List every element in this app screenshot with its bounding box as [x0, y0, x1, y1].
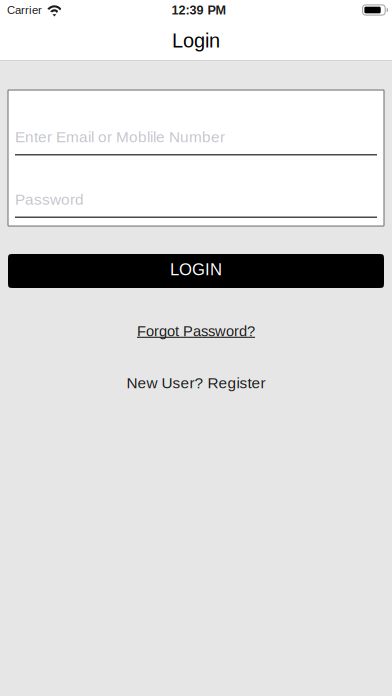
staticText: Password: [15, 191, 84, 208]
button[interactable]: New User? Register: [126, 374, 265, 391]
staticText: 12:39 PM: [171, 3, 226, 17]
staticText: Carrier: [7, 4, 42, 16]
staticText: LOGIN: [170, 260, 222, 279]
button[interactable]: Forgot Password?: [137, 323, 255, 339]
staticText: New User? Register: [126, 374, 265, 391]
button[interactable]: LOGIN: [8, 254, 384, 288]
staticText: Enter Email or Moblile Number: [15, 128, 225, 145]
staticText: Forgot Password?: [137, 323, 255, 339]
staticText: Login: [172, 29, 220, 52]
